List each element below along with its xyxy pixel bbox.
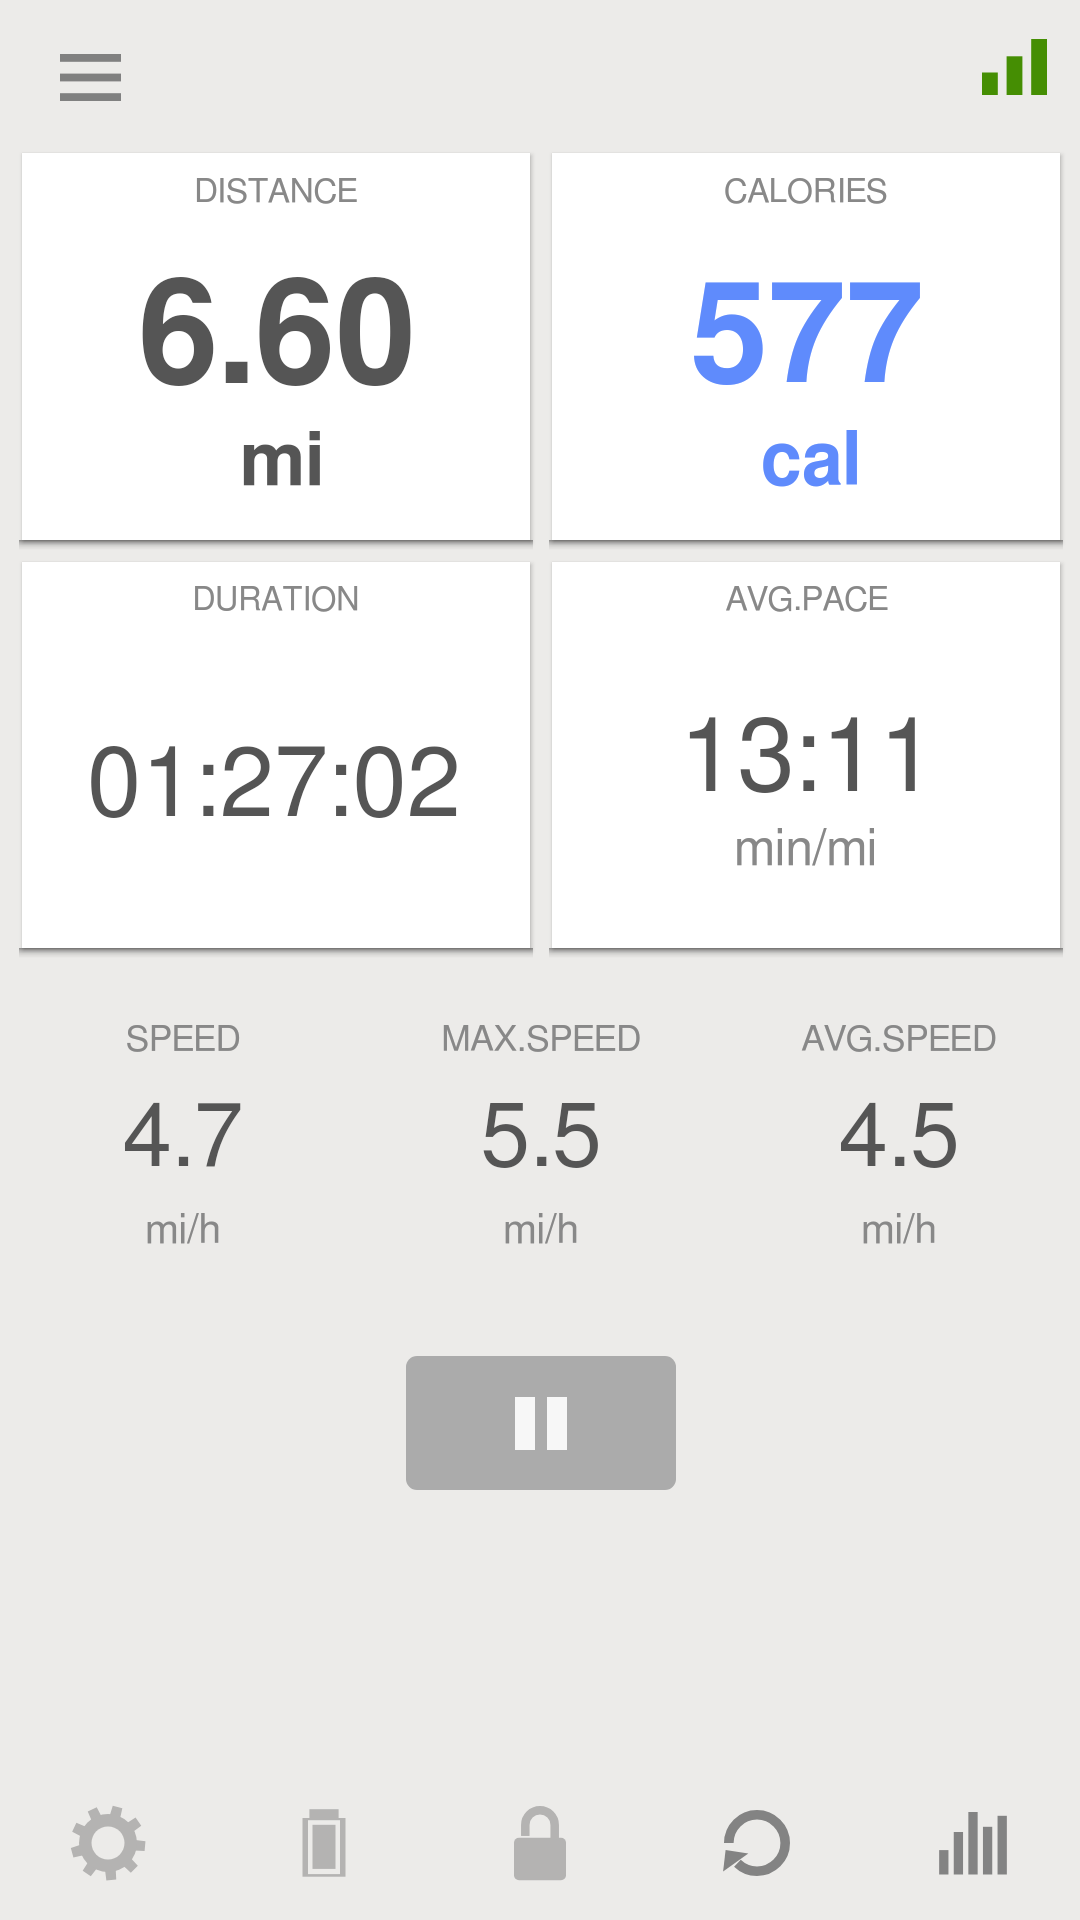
button[interactable]: Battery (216, 1763, 432, 1920)
staticText: mi/h (0, 1210, 563, 1251)
staticText: cal (431, 425, 1080, 499)
staticText: MAX.SPEED (161, 1023, 921, 1058)
staticText: mi (0, 425, 662, 500)
staticText: CALORIES (426, 175, 1080, 209)
staticText: 577 (427, 270, 1080, 410)
staticText: mi/h (161, 1210, 921, 1251)
button[interactable]: Reset (648, 1763, 864, 1920)
button[interactable]: Pause (406, 1356, 676, 1490)
staticText: DISTANCE (0, 175, 656, 209)
button[interactable]: Statistics (864, 1763, 1080, 1920)
staticText: DURATION (0, 584, 656, 617)
button[interactable]: GPS signal strength (969, 25, 1061, 107)
button[interactable] (4, 1005, 362, 1265)
button[interactable]: Menu (34, 32, 146, 122)
staticText: 01:27:02 (0, 738, 654, 836)
button[interactable] (552, 153, 1060, 540)
staticText: mi/h (519, 1210, 1080, 1251)
button[interactable]: Settings (0, 1763, 216, 1920)
staticText: 4.7 (0, 1095, 563, 1184)
staticText: 4.5 (519, 1095, 1080, 1184)
button[interactable] (720, 1005, 1078, 1265)
button[interactable] (552, 562, 1060, 948)
staticText: 13:11 (428, 708, 1080, 812)
staticText: min/mi (426, 825, 1080, 875)
staticText: AVG.PACE (427, 583, 1080, 617)
staticText: AVG.SPEED (519, 1023, 1080, 1058)
button[interactable] (22, 153, 530, 540)
staticText: 5.5 (161, 1095, 921, 1184)
button[interactable] (22, 562, 530, 948)
staticText: SPEED (0, 1023, 563, 1058)
button[interactable] (362, 1005, 720, 1265)
button[interactable]: Screen lock (432, 1763, 648, 1920)
staticText: 6.60 (0, 267, 657, 412)
